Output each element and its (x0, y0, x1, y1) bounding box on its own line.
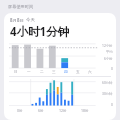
staticText: 12小时 (102, 43, 113, 48)
staticText: 六 (88, 70, 92, 75)
staticText: 30分钟 (102, 91, 113, 96)
button[interactable]: 今日每小时使用时间图表 (9, 79, 114, 113)
button[interactable]: 本周屏幕使用时间图表 (9, 42, 114, 75)
button[interactable]: 8月8日 (4, 13, 116, 120)
staticText: 0 (111, 102, 113, 106)
staticText: 18时 (81, 108, 89, 113)
staticText: 今天 (26, 17, 35, 23)
staticText: 一 (27, 70, 31, 75)
staticText: 12时 (59, 108, 67, 113)
staticText: 平均 (106, 50, 113, 54)
staticText: 0时 (17, 108, 23, 113)
staticText: 60分钟 (102, 80, 113, 85)
staticText: 6时 (38, 108, 44, 113)
staticText: 四 (64, 70, 68, 75)
staticText: 五 (76, 70, 80, 75)
staticText: 二 (40, 70, 44, 75)
staticText: 屏幕使用时间 (8, 4, 34, 9)
staticText: 日 (14, 70, 18, 75)
staticText: 8月8日 (10, 17, 24, 23)
staticText: 三 (52, 70, 56, 75)
staticText: 0 (111, 66, 113, 70)
staticText: 6小时 (104, 56, 113, 61)
staticText: 4小时1分钟 (10, 24, 70, 40)
